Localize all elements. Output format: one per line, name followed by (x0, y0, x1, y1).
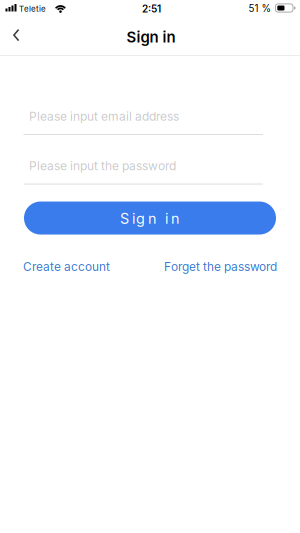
button[interactable]: Forget the password (164, 259, 277, 274)
staticText: Please input email address (29, 109, 179, 123)
staticText: Please input the password (29, 158, 176, 173)
staticText: 51 % (248, 3, 271, 14)
staticText: Forget the password (164, 259, 277, 274)
staticText: Create account (23, 259, 110, 274)
button[interactable]: Create account (23, 259, 110, 274)
staticText: S i g n i n (120, 210, 180, 227)
staticText: 2:51 (142, 3, 161, 15)
staticText: Teletie (19, 4, 46, 14)
staticText: Sign in (126, 28, 175, 46)
button[interactable]: Sign in (24, 201, 276, 234)
button[interactable]: Back (0, 20, 30, 55)
